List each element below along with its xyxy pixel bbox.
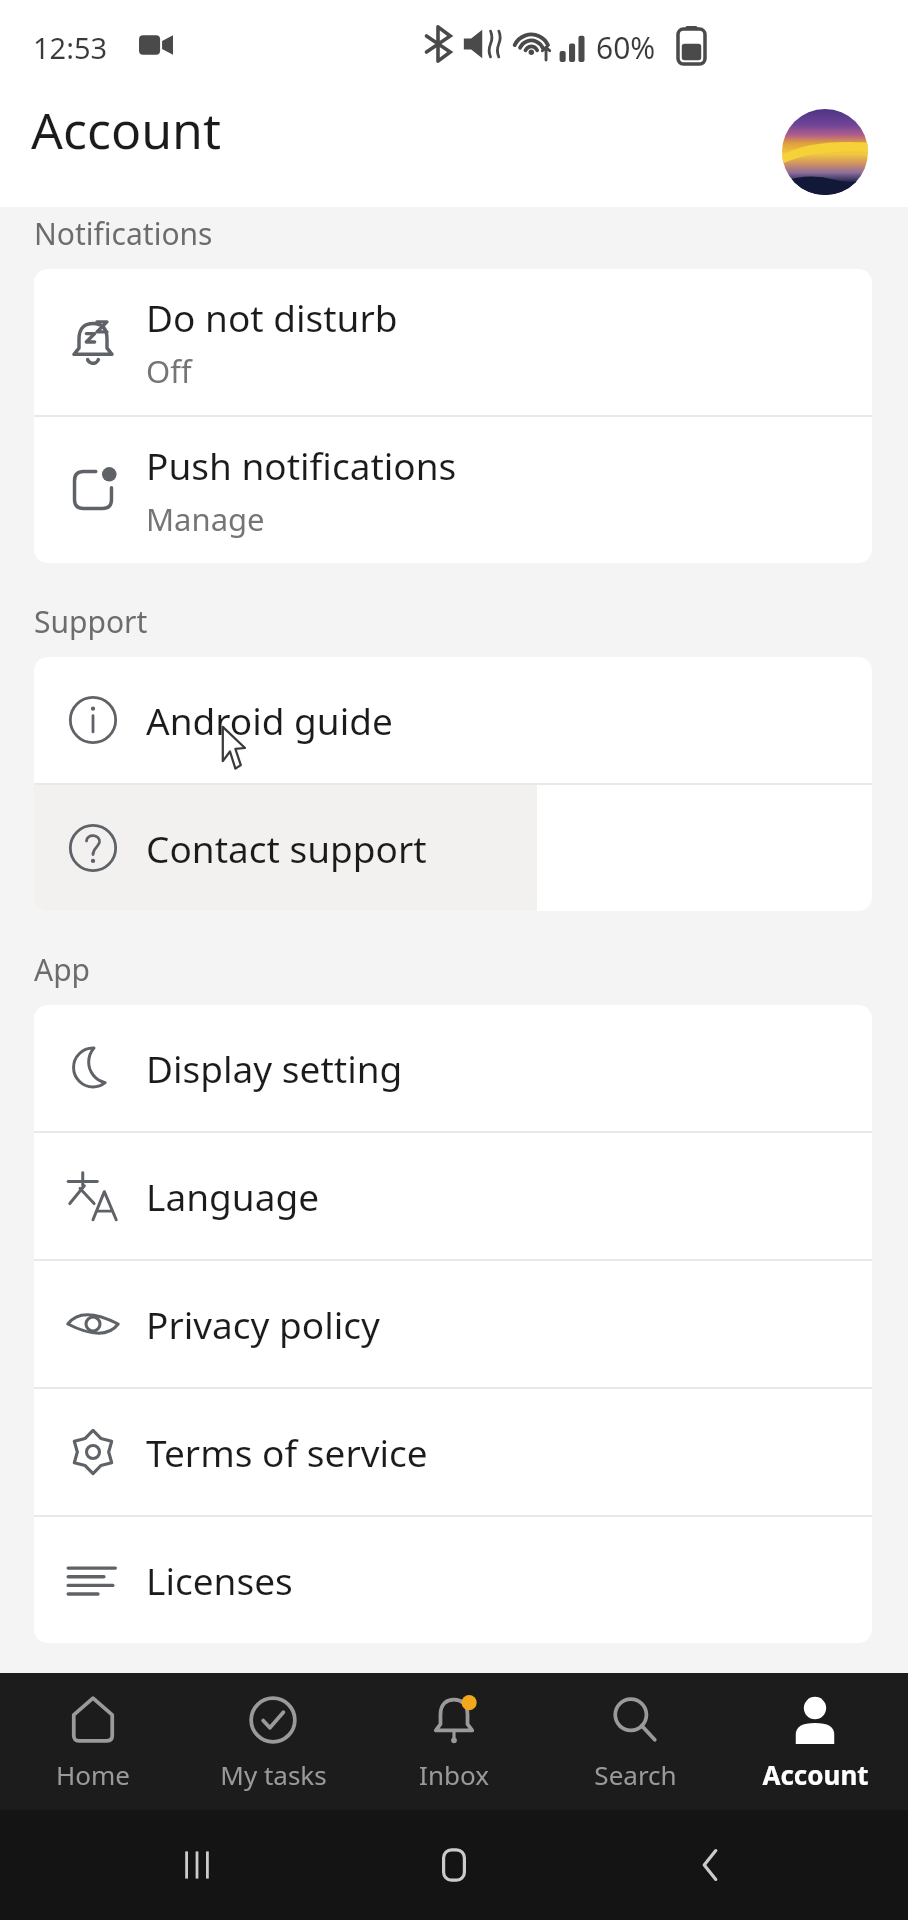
button[interactable]: Recents [137, 1810, 257, 1920]
button[interactable]: Terms of service [34, 1389, 872, 1515]
staticText: Off [146, 350, 192, 392]
staticText: Terms of service [146, 1427, 428, 1477]
staticText: Android guide [146, 695, 393, 745]
button[interactable]: Contact support [34, 785, 872, 911]
button[interactable]: Account [727, 1673, 903, 1810]
button[interactable]: Search [547, 1673, 723, 1810]
staticText: Inbox [419, 1757, 489, 1792]
staticText: Support [34, 601, 148, 642]
staticText: Do not disturb [146, 292, 398, 342]
button[interactable]: Home [394, 1810, 514, 1920]
staticText: My tasks [220, 1757, 327, 1792]
button[interactable]: Language [34, 1133, 872, 1259]
staticText: Search [594, 1757, 677, 1792]
staticText: Privacy policy [146, 1299, 380, 1349]
button[interactable]: Android guide [34, 657, 872, 783]
staticText: Contact support [146, 823, 427, 873]
staticText: 60% [596, 27, 656, 68]
button[interactable]: Privacy policy [34, 1261, 872, 1387]
staticText: Push notifications [146, 440, 457, 490]
staticText: Manage [146, 498, 265, 540]
staticText: Display setting [146, 1043, 403, 1093]
button[interactable]: Do not disturb [34, 269, 872, 415]
staticText: Account [31, 96, 222, 164]
staticText: App [34, 949, 91, 990]
staticText: Home [56, 1757, 130, 1792]
button[interactable]: Back [651, 1810, 771, 1920]
button[interactable]: Profile [782, 109, 868, 195]
staticText: Account [762, 1757, 869, 1792]
staticText: Language [146, 1171, 320, 1221]
button[interactable]: Licenses [34, 1517, 872, 1643]
staticText: 12:53 [33, 28, 108, 67]
button[interactable]: Inbox [366, 1673, 542, 1810]
button[interactable]: Display setting [34, 1005, 872, 1131]
staticText: Licenses [146, 1555, 293, 1605]
staticText: Notifications [34, 213, 213, 254]
button[interactable]: Home [5, 1673, 181, 1810]
button[interactable]: My tasks [185, 1673, 361, 1810]
button[interactable]: Push notifications [34, 417, 872, 563]
